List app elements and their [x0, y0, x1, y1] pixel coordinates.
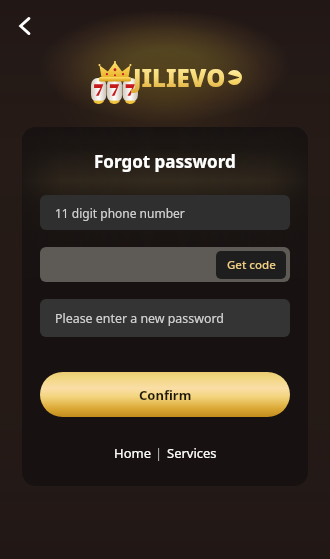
staticText: Confirm — [139, 386, 192, 404]
button[interactable]: Home — [110, 441, 155, 465]
staticText: Get code — [227, 257, 276, 273]
staticText: | — [155, 444, 163, 462]
button[interactable]: Back — [7, 8, 43, 44]
button[interactable]: Get code — [216, 251, 286, 279]
button[interactable]: Get code — [40, 247, 290, 282]
button[interactable]: Services — [163, 441, 221, 465]
staticText: Forgot password — [94, 150, 236, 173]
button[interactable]: Confirm — [40, 372, 290, 417]
button[interactable]: Please enter a new password — [40, 299, 290, 337]
staticText: Please enter a new password — [55, 310, 224, 327]
staticText: JILIEVO — [133, 61, 226, 94]
button[interactable]: 11 digit phone number — [40, 195, 290, 230]
staticText: 11 digit phone number — [55, 205, 185, 221]
